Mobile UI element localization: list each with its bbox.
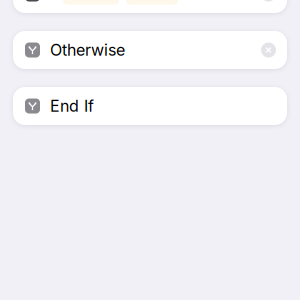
staticText: End If xyxy=(50,96,94,116)
button[interactable] xyxy=(13,0,287,13)
button[interactable]: Remove action xyxy=(261,0,276,1)
button[interactable]: Otherwise xyxy=(13,31,287,69)
button[interactable]: Remove action xyxy=(261,42,276,57)
staticText: Otherwise xyxy=(50,40,125,60)
button[interactable]: End If xyxy=(13,87,287,125)
